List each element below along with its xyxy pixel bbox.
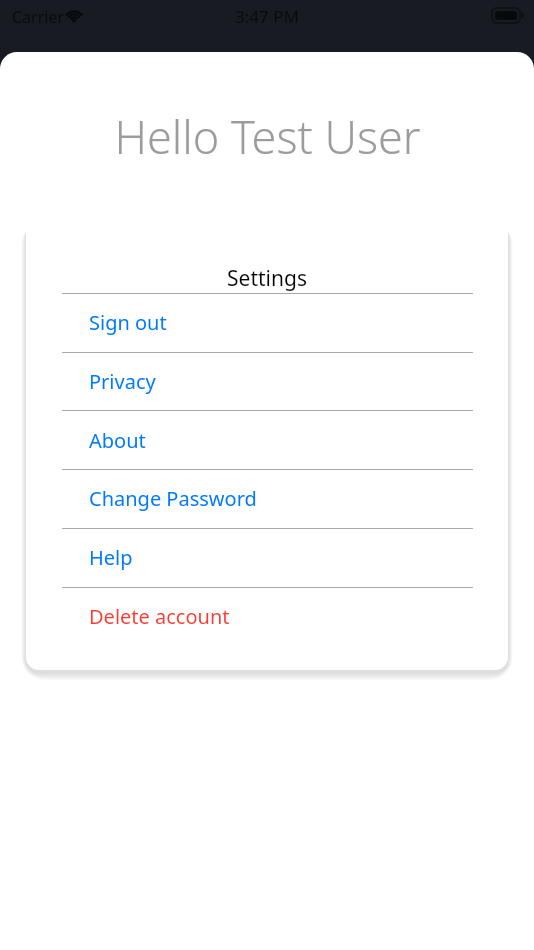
button[interactable]: Privacy [26,353,508,410]
button[interactable]: Help [26,529,508,586]
staticText: About [89,427,146,454]
staticText: Hello Test User [114,106,421,166]
staticText: Change Password [89,485,257,512]
button[interactable]: Change Password [26,470,508,527]
button[interactable]: About [26,412,508,469]
staticText: 3:47 PM [235,5,299,28]
staticText: Sign out [89,309,167,336]
staticText: Privacy [89,368,156,395]
staticText: Help [89,544,133,571]
button[interactable]: Sign out [26,294,508,351]
staticText: Delete account [89,603,230,630]
button[interactable]: Delete account [26,588,508,645]
staticText: Settings [227,264,307,293]
staticText: Carrier [12,6,65,28]
